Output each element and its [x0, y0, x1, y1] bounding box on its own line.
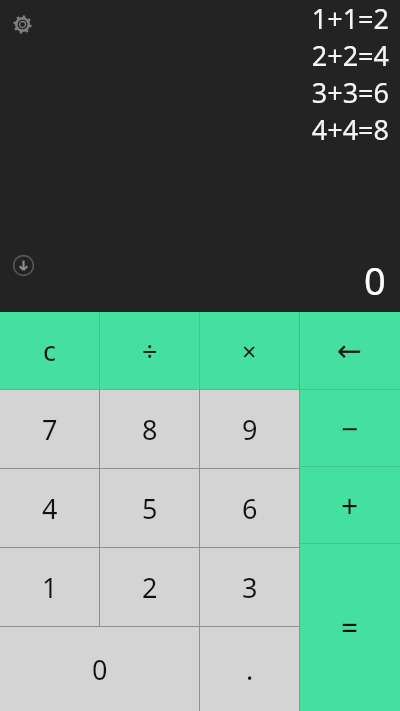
staticText: 3: [242, 569, 258, 606]
button[interactable]: 7: [0, 390, 99, 468]
staticText: +: [341, 485, 359, 526]
button[interactable]: ×: [200, 312, 299, 389]
staticText: =: [341, 607, 359, 648]
button[interactable]: 9: [200, 390, 299, 468]
button[interactable]: 1+1=2: [311, 0, 389, 37]
staticText: 4: [42, 490, 58, 527]
button[interactable]: −: [300, 390, 400, 466]
button[interactable]: 4+4=8: [311, 111, 389, 148]
button[interactable]: ÷: [100, 312, 199, 389]
button[interactable]: .: [200, 627, 299, 711]
button[interactable]: Backspace: [300, 312, 400, 389]
staticText: −: [341, 408, 359, 449]
staticText: 1: [42, 569, 58, 606]
staticText: 0: [364, 254, 386, 306]
button[interactable]: 0: [0, 627, 199, 711]
staticText: 0: [92, 651, 108, 688]
staticText: 2: [142, 569, 158, 606]
button[interactable]: 3: [200, 548, 299, 626]
staticText: 3+3=6: [311, 74, 389, 111]
staticText: 2+2=4: [311, 37, 389, 74]
staticText: 4+4=8: [311, 111, 389, 148]
staticText: 8: [142, 411, 158, 448]
button[interactable]: 3+3=6: [311, 74, 389, 111]
button[interactable]: +: [300, 467, 400, 543]
staticText: ←: [337, 333, 363, 368]
staticText: .: [246, 651, 254, 688]
staticText: 7: [42, 411, 58, 448]
staticText: ×: [242, 334, 257, 368]
button[interactable]: 1: [0, 548, 99, 626]
button[interactable]: Show history: [9, 251, 37, 279]
staticText: c: [43, 332, 56, 369]
button[interactable]: 2+2=4: [311, 37, 389, 74]
button[interactable]: 5: [100, 469, 199, 547]
staticText: 1+1=2: [311, 0, 389, 37]
staticText: 9: [242, 411, 258, 448]
button[interactable]: Settings: [8, 10, 36, 38]
button[interactable]: 8: [100, 390, 199, 468]
staticText: 5: [142, 490, 158, 527]
button[interactable]: =: [300, 544, 400, 711]
button[interactable]: 6: [200, 469, 299, 547]
staticText: ÷: [142, 332, 158, 369]
button[interactable]: 4: [0, 469, 99, 547]
button[interactable]: 2: [100, 548, 199, 626]
staticText: 6: [242, 490, 258, 527]
button[interactable]: c: [0, 312, 99, 389]
